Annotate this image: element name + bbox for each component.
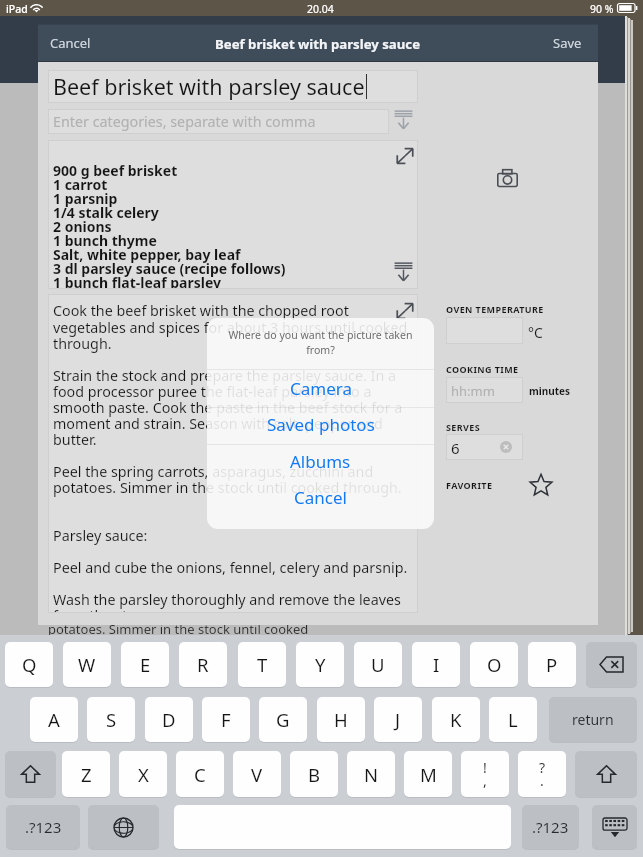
button[interactable]: .?123: [6, 805, 80, 849]
button[interactable]: !: [461, 751, 509, 797]
button[interactable]: J: [374, 697, 422, 742]
staticText: .: [540, 771, 544, 790]
staticText: ?: [539, 758, 546, 777]
button[interactable]: Shift: [5, 751, 56, 797]
button[interactable]: O: [470, 642, 518, 687]
staticText: R: [197, 652, 209, 677]
staticText: Cook the beef brisket with the chopped r…: [53, 301, 415, 613]
button[interactable]: Z: [62, 751, 110, 797]
staticText: A: [48, 707, 60, 732]
staticText: Z: [81, 762, 92, 787]
staticText: minutes: [529, 384, 571, 398]
staticText: Beef brisket with parsley sauce: [53, 72, 365, 101]
button[interactable]: Hide keyboard: [592, 805, 637, 849]
button[interactable]: Q: [5, 642, 53, 687]
staticText: K: [450, 707, 462, 732]
button[interactable]: G: [259, 697, 307, 742]
button[interactable]: Cancel: [207, 479, 434, 515]
staticText: Y: [315, 652, 326, 677]
staticText: Beef brisket with parsley sauce: [215, 35, 421, 53]
staticText: B: [308, 762, 321, 787]
staticText: .?123: [25, 817, 62, 837]
staticText: 6: [451, 438, 460, 458]
staticText: W: [78, 652, 96, 677]
staticText: N: [364, 762, 379, 787]
button[interactable]: return: [549, 697, 637, 742]
staticText: return: [572, 710, 614, 729]
staticText: F: [221, 707, 231, 732]
button[interactable]: K: [432, 697, 480, 742]
staticText: Cancel: [294, 486, 347, 509]
button[interactable]: B: [290, 751, 338, 797]
staticText: M: [420, 762, 437, 787]
button[interactable]: W: [63, 642, 111, 687]
staticText: Albums: [290, 450, 351, 473]
staticText: H: [334, 707, 348, 732]
button[interactable]: Clear serves: [500, 441, 512, 453]
button[interactable]: I: [412, 642, 460, 687]
staticText: P: [546, 652, 558, 677]
staticText: T: [257, 652, 268, 677]
button[interactable]: Camera: [207, 370, 434, 406]
button[interactable]: E: [121, 642, 169, 687]
staticText: D: [162, 707, 176, 732]
button[interactable]: Expand ingredients: [396, 147, 414, 165]
button[interactable]: Expand instructions: [396, 302, 414, 320]
staticText: S: [106, 707, 117, 732]
button[interactable]: L: [489, 697, 537, 742]
button[interactable]: Shift: [575, 751, 637, 797]
staticText: !: [483, 758, 487, 777]
button[interactable]: ?: [518, 751, 566, 797]
button[interactable]: Category suggestions: [394, 110, 413, 129]
staticText: °C: [528, 323, 543, 342]
staticText: J: [395, 707, 401, 732]
button[interactable]: A: [30, 697, 78, 742]
staticText: U: [371, 652, 385, 677]
button[interactable]: M: [404, 751, 452, 797]
button[interactable]: Ingredient suggestions: [394, 262, 413, 281]
staticText: .?123: [532, 817, 569, 837]
button[interactable]: Save: [546, 26, 588, 60]
button[interactable]: X: [119, 751, 167, 797]
button[interactable]: Switch keyboard: [88, 805, 159, 849]
staticText: FAVORITE: [446, 479, 493, 491]
button[interactable]: H: [317, 697, 365, 742]
staticText: V: [251, 762, 263, 787]
button[interactable]: V: [233, 751, 281, 797]
button[interactable]: S: [87, 697, 135, 742]
button[interactable]: P: [528, 642, 576, 687]
staticText: X: [138, 762, 149, 787]
button[interactable]: Backspace: [586, 642, 637, 687]
staticText: 90 %: [590, 2, 614, 16]
staticText: 20.04: [307, 2, 334, 16]
staticText: E: [140, 652, 151, 677]
button[interactable]: D: [145, 697, 193, 742]
button[interactable]: Y: [296, 642, 344, 687]
staticText: Camera: [290, 377, 352, 400]
button[interactable]: Favorite: [530, 474, 552, 495]
staticText: COOKING TIME: [446, 363, 519, 375]
staticText: Q: [22, 652, 37, 677]
staticText: SERVES: [446, 421, 481, 433]
button[interactable]: N: [347, 751, 395, 797]
staticText: Enter categories, separate with comma: [53, 112, 316, 131]
staticText: hh:mm: [451, 382, 495, 400]
button[interactable]: U: [354, 642, 402, 687]
button[interactable]: C: [176, 751, 224, 797]
staticText: ,: [483, 771, 487, 790]
button[interactable]: Add photo: [497, 168, 518, 189]
button[interactable]: Albums: [207, 443, 434, 479]
staticText: iPad: [6, 2, 28, 16]
button[interactable]: .?123: [522, 805, 579, 849]
button[interactable]: F: [202, 697, 250, 742]
staticText: L: [508, 707, 518, 732]
button[interactable]: T: [238, 642, 286, 687]
staticText: G: [276, 707, 290, 732]
staticText: 900 g beef brisket 1 carrot 1 parsnip 1/…: [53, 161, 286, 289]
button[interactable]: Saved photos: [207, 406, 434, 442]
staticText: C: [194, 762, 206, 787]
staticText: Cancel: [50, 34, 91, 52]
button[interactable]: Cancel: [43, 26, 97, 60]
button[interactable]: R: [179, 642, 227, 687]
